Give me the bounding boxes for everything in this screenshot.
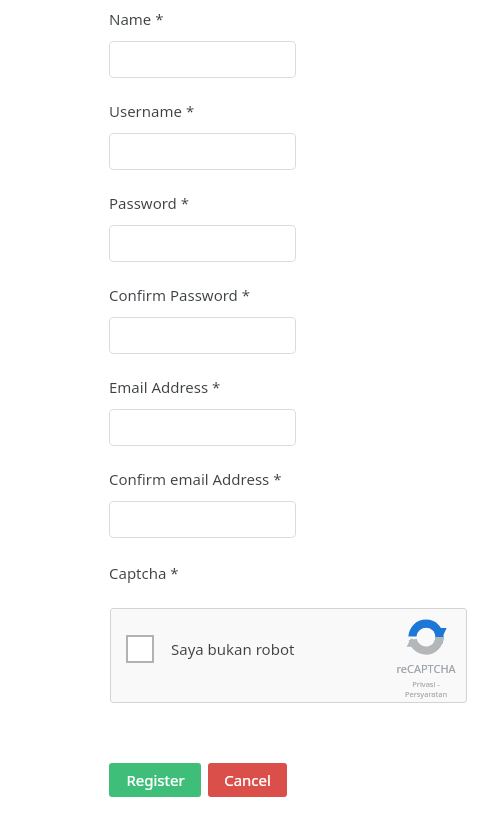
button[interactable]: Email Address * — [109, 409, 296, 446]
staticText: reCAPTCHA — [396, 661, 456, 676]
button[interactable]: Username * — [109, 133, 296, 170]
staticText: Username * — [109, 101, 195, 121]
staticText: Saya bukan robot — [171, 639, 295, 659]
button[interactable]: Register — [109, 763, 201, 797]
staticText: Confirm email Address * — [109, 469, 282, 489]
button[interactable]: Cancel — [208, 763, 287, 797]
staticText: Captcha * — [109, 563, 179, 583]
staticText: Cancel — [224, 770, 271, 790]
button[interactable]: Name * — [109, 41, 296, 78]
button[interactable]: Saya bukan robot — [118, 630, 305, 668]
button[interactable]: Confirm Password * — [109, 317, 296, 354]
button[interactable]: Confirm email Address * — [109, 501, 296, 538]
button[interactable]: Password * — [109, 225, 296, 262]
staticText: Password * — [109, 193, 190, 213]
staticText: Email Address * — [109, 377, 221, 397]
staticText: Privasi - Persyaratan — [391, 679, 461, 699]
staticText: Register — [126, 770, 185, 790]
staticText: Name * — [109, 9, 164, 29]
staticText: Confirm Password * — [109, 285, 250, 305]
